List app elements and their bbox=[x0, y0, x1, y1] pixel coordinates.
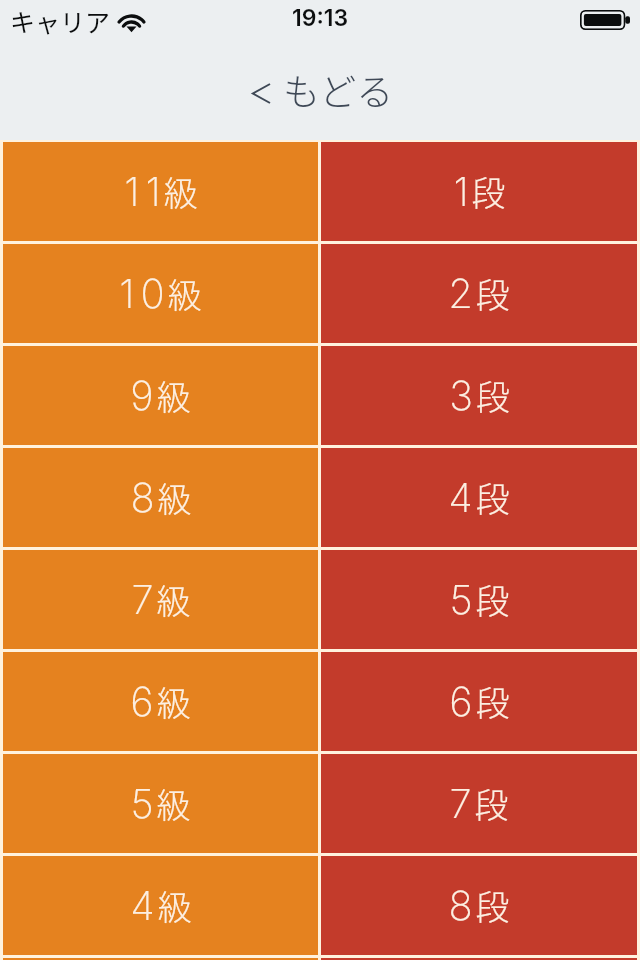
staticText: 4級 bbox=[130, 881, 192, 930]
staticText: 6級 bbox=[130, 677, 191, 726]
button[interactable]: 6段 bbox=[321, 652, 637, 751]
staticText: キャリア bbox=[10, 3, 111, 39]
other: Battery full bbox=[580, 10, 630, 30]
staticText: 1段 bbox=[453, 167, 506, 216]
staticText: 8級 bbox=[130, 473, 192, 522]
staticText: 9級 bbox=[130, 371, 191, 420]
staticText: 7級 bbox=[131, 575, 191, 624]
staticText: 5段 bbox=[449, 575, 510, 624]
staticText: 19:13 bbox=[292, 4, 349, 32]
button[interactable]: 8段 bbox=[321, 856, 637, 955]
staticText: 11級 bbox=[124, 167, 198, 216]
button[interactable]: 8級 bbox=[3, 448, 318, 547]
staticText: 3段 bbox=[449, 371, 510, 420]
button[interactable]: 5級 bbox=[3, 754, 318, 853]
button[interactable]: 10級 bbox=[3, 244, 318, 343]
staticText: 4段 bbox=[448, 473, 510, 522]
staticText: 7段 bbox=[449, 779, 509, 828]
staticText: 6段 bbox=[449, 677, 510, 726]
button[interactable]: 1段 bbox=[321, 142, 637, 241]
button[interactable]: 9級 bbox=[3, 346, 318, 445]
button[interactable]: 4段 bbox=[321, 448, 637, 547]
staticText: 2段 bbox=[448, 269, 510, 318]
staticText: 8段 bbox=[448, 881, 510, 930]
button[interactable]: 6級 bbox=[3, 652, 318, 751]
staticText: 5級 bbox=[130, 779, 191, 828]
button[interactable]: 4級 bbox=[3, 856, 318, 955]
button[interactable]: 5段 bbox=[321, 550, 637, 649]
button[interactable]: 2段 bbox=[321, 244, 637, 343]
button[interactable]: 3段 bbox=[321, 346, 637, 445]
button[interactable]: 7段 bbox=[321, 754, 637, 853]
button[interactable]: 7級 bbox=[3, 550, 318, 649]
staticText: もどる bbox=[283, 63, 394, 117]
other: Wi-Fi signal bbox=[119, 12, 144, 32]
button[interactable]: もどる bbox=[242, 55, 398, 125]
button[interactable]: 11級 bbox=[3, 142, 318, 241]
staticText: 10級 bbox=[119, 269, 202, 318]
